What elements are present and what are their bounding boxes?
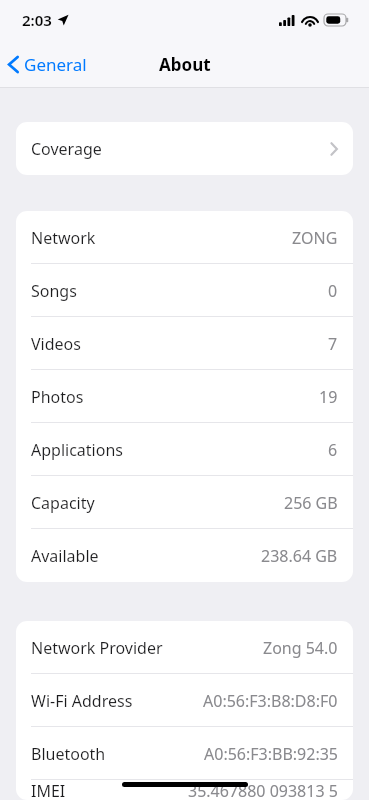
staticText: A0:56:F3:B8:D8:F0 bbox=[203, 690, 338, 712]
staticText: 6 bbox=[328, 439, 338, 461]
staticText: 35.467880 093813 5 bbox=[188, 780, 338, 800]
button[interactable]: Applications bbox=[16, 423, 353, 476]
staticText: Available bbox=[31, 545, 99, 567]
staticText: Capacity bbox=[31, 492, 95, 514]
staticText: A0:56:F3:BB:92:35 bbox=[204, 743, 338, 765]
staticText: Bluetooth bbox=[31, 743, 106, 765]
staticText: Network Provider bbox=[31, 637, 163, 659]
button[interactable]: Network Provider bbox=[16, 621, 353, 674]
staticText: IMEI bbox=[31, 780, 66, 800]
staticText: Applications bbox=[31, 439, 123, 461]
button[interactable]: Capacity bbox=[16, 476, 353, 529]
button[interactable]: Network bbox=[16, 211, 353, 264]
staticText: Songs bbox=[31, 280, 77, 302]
staticText: About bbox=[159, 53, 211, 76]
button[interactable]: IMEI bbox=[16, 780, 353, 800]
staticText: Network bbox=[31, 227, 96, 249]
staticText: Videos bbox=[31, 333, 81, 355]
button[interactable]: Available bbox=[16, 529, 353, 582]
staticText: Wi-Fi Address bbox=[31, 690, 133, 712]
staticText: 19 bbox=[319, 386, 338, 408]
staticText: 0 bbox=[328, 280, 338, 302]
button[interactable]: Photos bbox=[16, 370, 353, 423]
button[interactable]: Songs bbox=[16, 264, 353, 317]
staticText: 7 bbox=[328, 333, 338, 355]
staticText: Zong 54.0 bbox=[263, 637, 338, 659]
button[interactable]: Videos bbox=[16, 317, 353, 370]
button[interactable]: Wi-Fi Address bbox=[16, 674, 353, 727]
button[interactable]: Coverage bbox=[16, 122, 353, 175]
staticText: ZONG bbox=[292, 227, 338, 249]
staticText: 238.64 GB bbox=[261, 545, 338, 567]
staticText: 256 GB bbox=[284, 492, 338, 514]
staticText: Photos bbox=[31, 386, 84, 408]
button[interactable]: General bbox=[0, 47, 97, 82]
staticText: 2:03 bbox=[22, 10, 52, 30]
staticText: Coverage bbox=[31, 138, 102, 160]
button[interactable]: Bluetooth bbox=[16, 727, 353, 780]
staticText: General bbox=[24, 53, 87, 76]
